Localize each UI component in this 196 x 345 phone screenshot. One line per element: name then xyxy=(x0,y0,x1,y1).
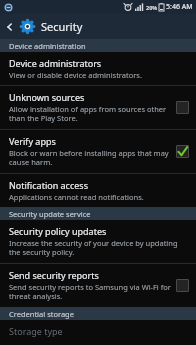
button[interactable]: Storage type xyxy=(0,320,196,345)
button[interactable]: Verify apps xyxy=(0,130,196,173)
staticText: Security xyxy=(41,19,83,34)
button[interactable]: Security policy updates xyxy=(0,220,196,263)
staticText: Device administrators xyxy=(9,57,102,69)
staticText: Send security reports xyxy=(9,269,99,281)
staticText: Credential storage xyxy=(9,309,74,319)
staticText: Storage type xyxy=(9,325,63,337)
staticText: Increase the security of your device by … xyxy=(9,238,190,258)
staticText: Block or warn before installing apps tha… xyxy=(9,148,171,168)
staticText: Allow installation of apps from sources … xyxy=(9,104,171,124)
button[interactable]: Send security reports xyxy=(175,278,190,293)
button[interactable]: Device administrators xyxy=(0,52,196,85)
staticText: Send security reports to Samsung via Wi-… xyxy=(9,282,171,302)
button[interactable]: Verify apps xyxy=(175,144,190,159)
staticText: Device administration xyxy=(9,41,86,51)
button[interactable]: Unknown sources xyxy=(175,100,190,115)
button[interactable]: Back xyxy=(0,14,20,39)
staticText: Security update service xyxy=(9,209,91,219)
button[interactable]: Unknown sources xyxy=(0,86,196,129)
button[interactable]: Send security reports xyxy=(0,264,196,307)
staticText: View or disable device administrators. xyxy=(9,70,142,80)
staticText: Applications cannot read notifications. xyxy=(9,192,144,202)
staticText: Security policy updates xyxy=(9,225,107,237)
staticText: Verify apps xyxy=(9,135,56,147)
staticText: Notification access xyxy=(9,179,88,191)
staticText: Unknown sources xyxy=(9,91,85,103)
staticText: 5:46 AM xyxy=(166,2,193,12)
button[interactable]: Notification access xyxy=(0,174,196,207)
staticText: 20% xyxy=(146,4,158,11)
